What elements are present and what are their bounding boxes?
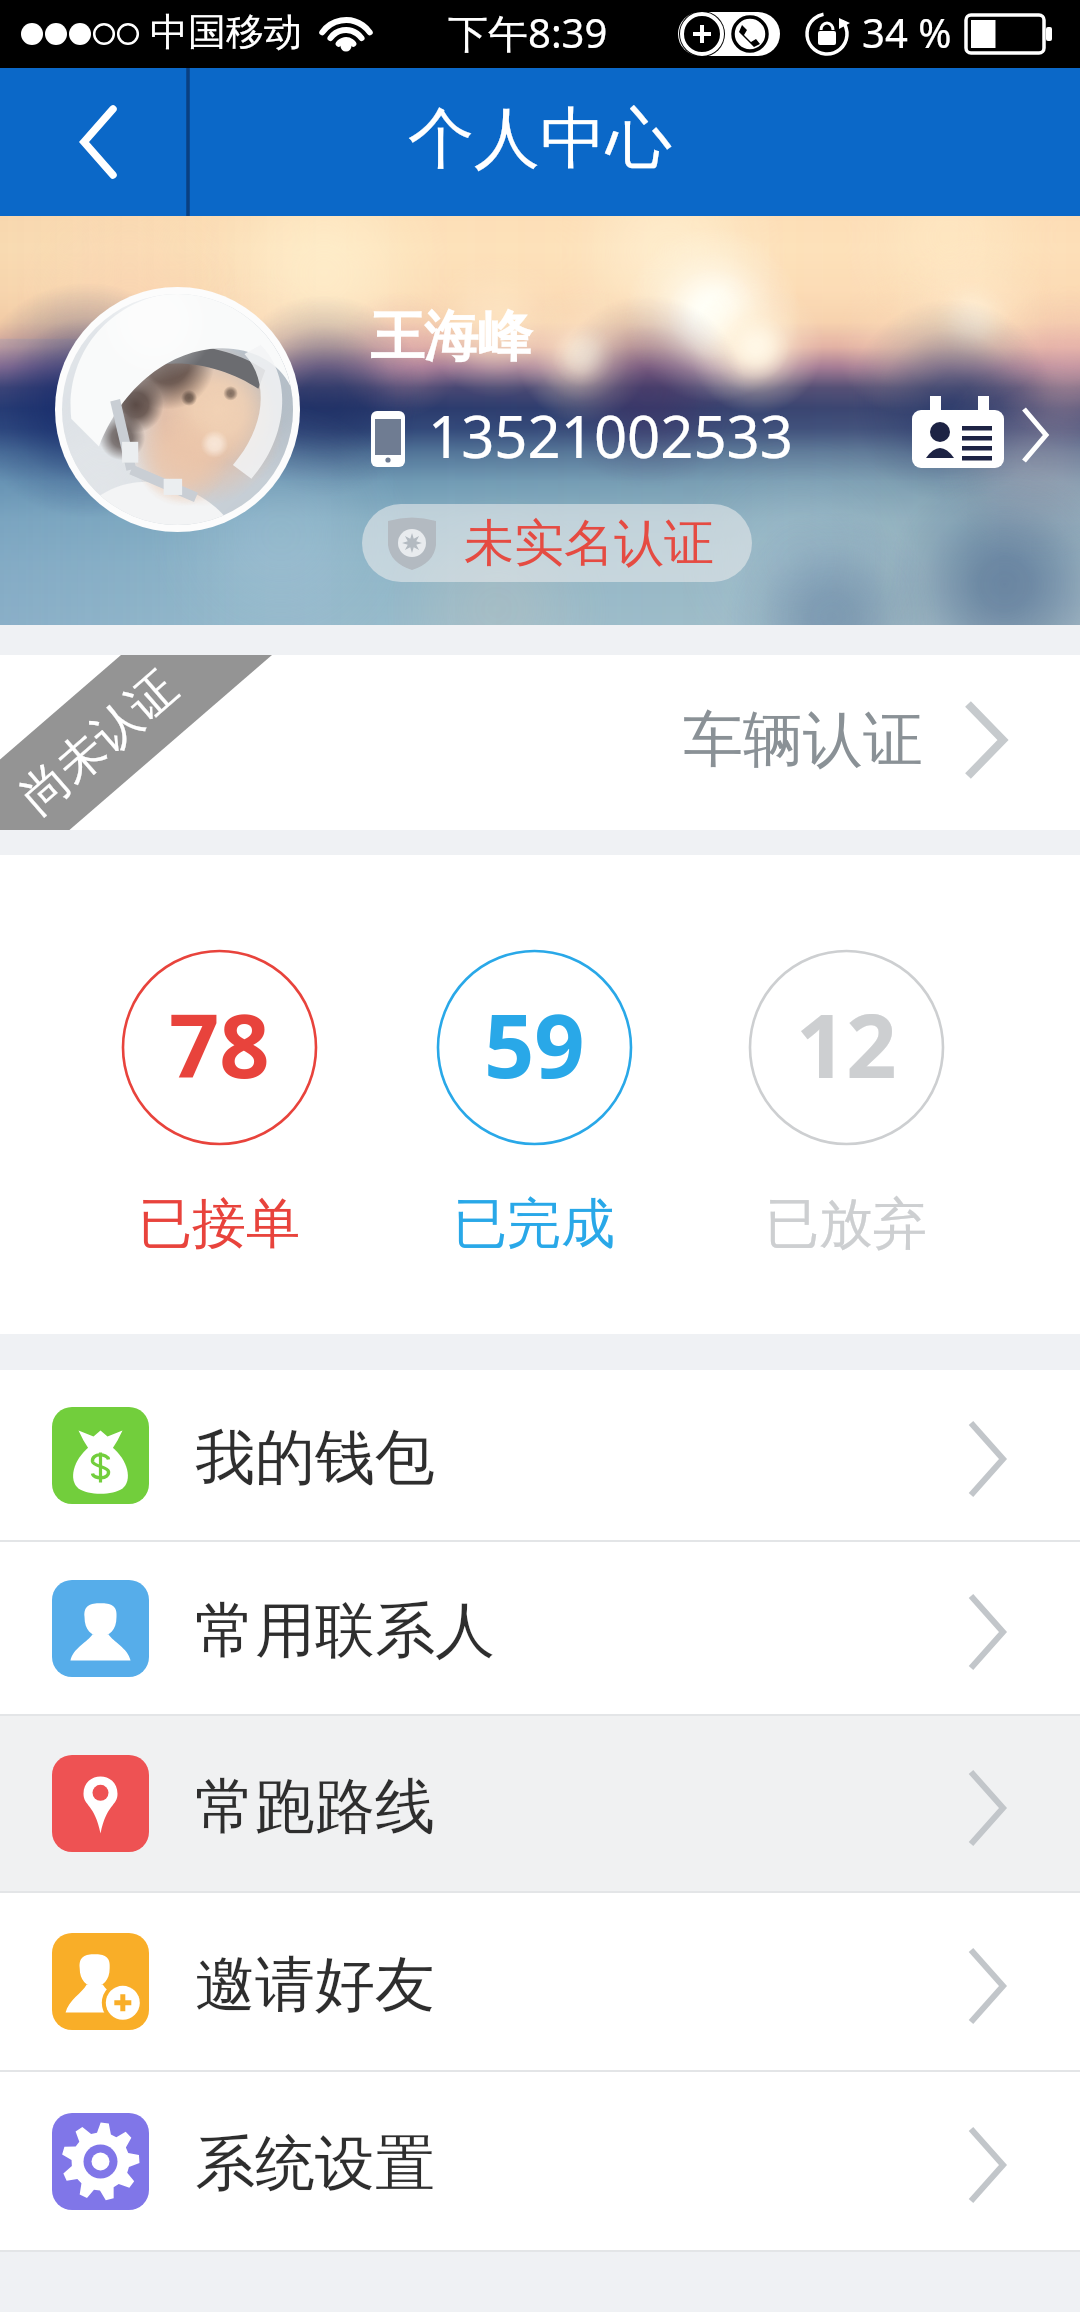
staticText: 34 % [862, 5, 952, 59]
staticText: 尚未认证 [9, 659, 189, 826]
button[interactable]: Back [0, 68, 186, 216]
button[interactable]: 12 [748, 949, 945, 1146]
staticText: 已接单 [138, 1190, 300, 1258]
staticText: 车辆认证 [683, 702, 923, 778]
button[interactable]: 系统设置 [0, 2072, 1080, 2250]
button[interactable]: 78 [121, 949, 318, 1146]
staticText: 78 [169, 984, 270, 1104]
staticText: 邀请好友 [195, 1947, 435, 2023]
staticText: 中国移动 [150, 8, 302, 56]
button[interactable]: 常用联系人 [0, 1542, 1080, 1714]
staticText: 我的钱包 [195, 1420, 435, 1496]
button[interactable]: Driver licence [910, 396, 1052, 474]
staticText: 已完成 [453, 1190, 615, 1258]
staticText: 12 [796, 984, 897, 1104]
staticText: 已放弃 [765, 1190, 927, 1258]
button[interactable]: 未实名认证 [362, 504, 752, 582]
staticText: 个人中心 [408, 97, 672, 180]
staticText: 王海峰 [370, 303, 532, 371]
button[interactable]: 邀请好友 [0, 1893, 1080, 2070]
staticText: 常跑路线 [195, 1769, 435, 1845]
staticText: 13521002533 [428, 396, 793, 475]
staticText: 59 [484, 984, 585, 1104]
button[interactable]: Profile photo [62, 294, 293, 525]
staticText: 下午8:39 [448, 5, 608, 60]
staticText: 未实名认证 [464, 512, 714, 575]
button[interactable]: 我的钱包 [0, 1370, 1080, 1540]
button[interactable]: 尚未认证 [0, 655, 1080, 830]
button[interactable]: 常跑路线 [0, 1716, 1080, 1891]
staticText: 系统设置 [195, 2126, 435, 2202]
staticText: 常用联系人 [195, 1593, 495, 1669]
button[interactable]: 59 [436, 949, 633, 1146]
